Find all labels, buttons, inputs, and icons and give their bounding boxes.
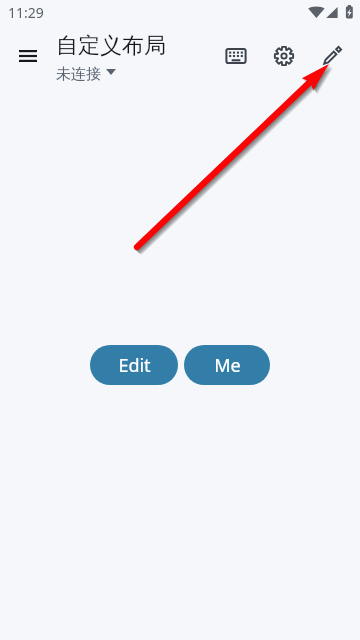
button[interactable]: Edit: [310, 34, 354, 78]
staticText: Edit: [118, 353, 151, 378]
button[interactable]: Navigation menu: [8, 36, 48, 76]
button[interactable]: Me: [184, 345, 270, 385]
staticText: 11:29: [8, 3, 44, 22]
staticText: 自定义布局: [56, 32, 166, 60]
button[interactable]: Edit: [90, 345, 178, 385]
button[interactable]: 未连接: [54, 62, 120, 84]
button[interactable]: Settings: [262, 34, 306, 78]
staticText: Me: [214, 353, 241, 378]
staticText: 未连接: [56, 65, 101, 84]
button[interactable]: Keyboard: [214, 34, 258, 78]
